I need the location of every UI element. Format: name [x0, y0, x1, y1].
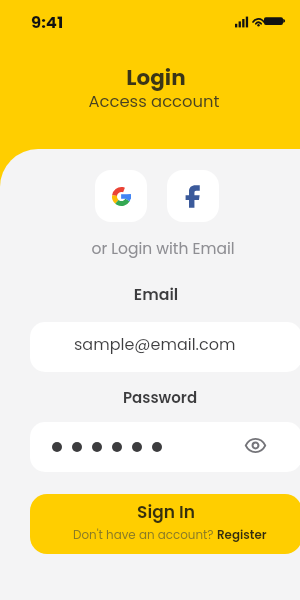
button[interactable]: sample@email.com: [30, 322, 300, 372]
button[interactable]: Sign in with Facebook: [167, 170, 219, 222]
staticText: Don't have an account?: [73, 527, 217, 544]
button[interactable]: Show password: [30, 422, 300, 472]
staticText: or Login with Email: [26, 238, 300, 260]
staticText: Email: [12, 283, 300, 305]
staticText: sample@email.com: [74, 333, 236, 355]
staticText: Access account: [8, 90, 300, 113]
staticText: Login: [12, 62, 300, 92]
staticText: Password: [20, 387, 300, 408]
staticText: 9:41: [31, 11, 64, 34]
staticText: Sign In: [30, 500, 300, 524]
button[interactable]: Sign In: [30, 494, 300, 554]
button[interactable]: Sign in with Google: [95, 170, 147, 222]
button[interactable]: Register: [217, 527, 267, 544]
button[interactable]: Show password: [240, 432, 270, 462]
